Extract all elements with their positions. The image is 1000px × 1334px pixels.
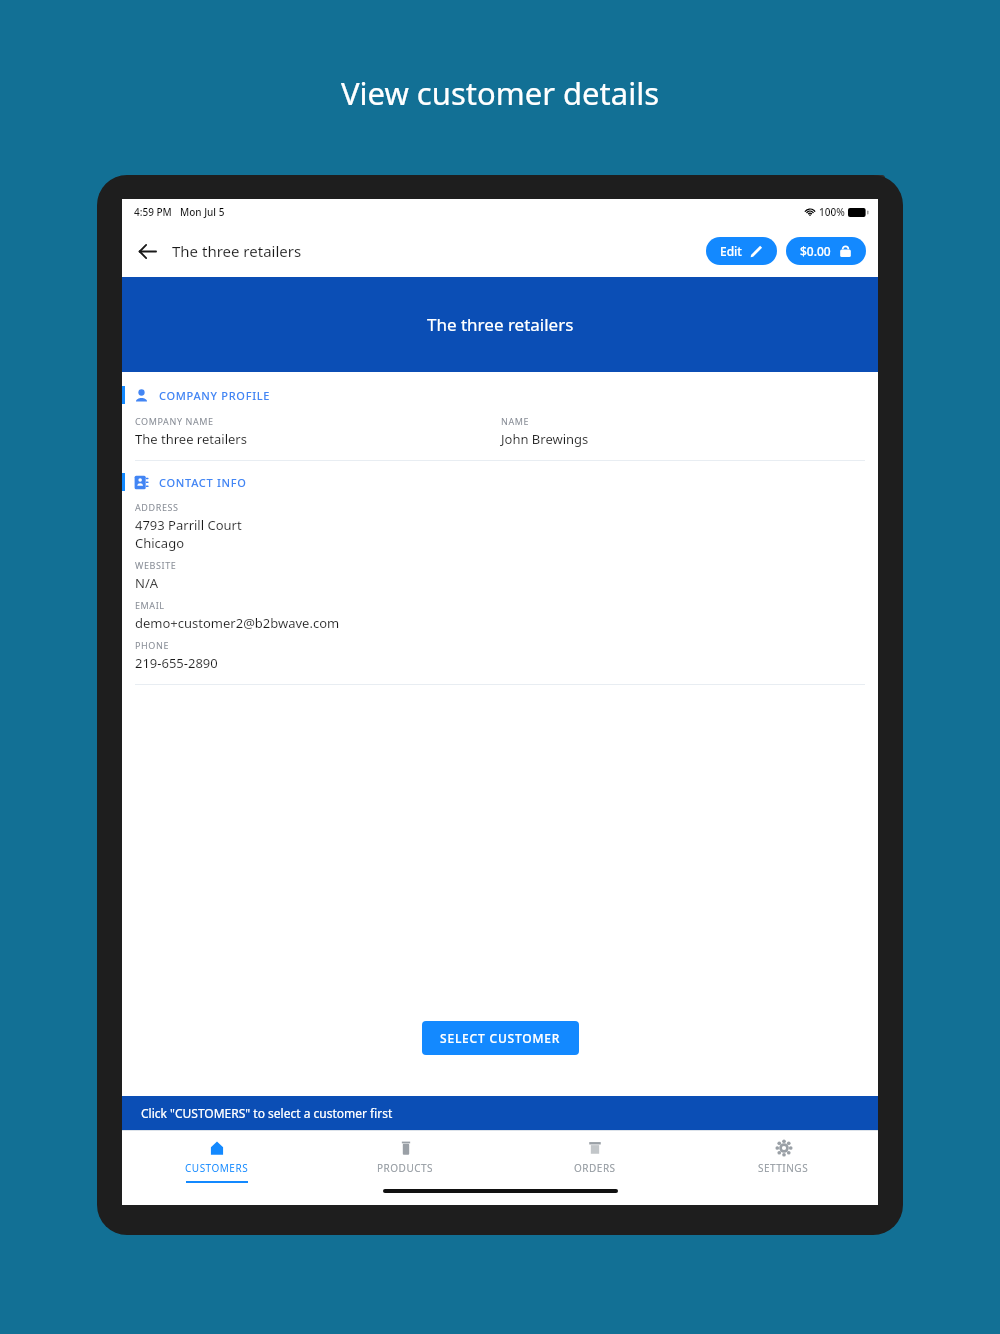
staticText: PHONE xyxy=(135,639,169,651)
staticText: 100% xyxy=(819,205,845,219)
staticText: COMPANY PROFILE xyxy=(159,388,271,403)
button[interactable]: SETTINGS xyxy=(689,1131,878,1187)
staticText: ADDRESS xyxy=(135,501,179,513)
staticText: N/A xyxy=(135,574,159,592)
staticText: The three retailers xyxy=(172,241,302,261)
staticText: ORDERS xyxy=(574,1161,616,1175)
staticText: NAME xyxy=(501,415,530,427)
button[interactable]: ORDERS xyxy=(500,1131,689,1187)
staticText: 4793 Parrill Court xyxy=(135,516,242,534)
staticText: Chicago xyxy=(135,534,184,552)
button[interactable]: $0.00 xyxy=(786,237,866,265)
staticText: CUSTOMERS xyxy=(185,1161,249,1175)
button[interactable]: SELECT CUSTOMER xyxy=(422,1021,579,1055)
staticText: SELECT CUSTOMER xyxy=(440,1030,561,1046)
staticText: demo+customer2@b2bwave.com xyxy=(135,614,340,632)
staticText: COMPANY NAME xyxy=(135,415,214,427)
staticText: WEBSITE xyxy=(135,559,177,571)
staticText: Mon Jul 5 xyxy=(180,205,225,219)
staticText: Edit xyxy=(720,243,742,259)
staticText: CONTACT INFO xyxy=(159,475,247,490)
button[interactable]: Edit xyxy=(706,237,777,265)
staticText: 4:59 PM xyxy=(134,205,172,219)
staticText: SETTINGS xyxy=(758,1161,809,1175)
staticText: 219-655-2890 xyxy=(135,654,218,672)
staticText: The three retailers xyxy=(427,313,574,336)
button[interactable]: Back xyxy=(128,232,166,270)
staticText: John Brewings xyxy=(501,430,589,448)
button[interactable]: CUSTOMERS xyxy=(122,1131,311,1187)
staticText: View customer details xyxy=(0,72,1000,114)
staticText: PRODUCTS xyxy=(377,1161,434,1175)
staticText: EMAIL xyxy=(135,599,165,611)
button[interactable]: PRODUCTS xyxy=(311,1131,500,1187)
staticText: The three retailers xyxy=(135,430,247,448)
staticText: $0.00 xyxy=(800,243,831,259)
staticText: Click "CUSTOMERS" to select a customer f… xyxy=(141,1105,393,1121)
